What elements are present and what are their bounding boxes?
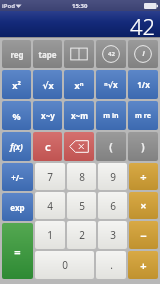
staticText: m re — [135, 111, 151, 121]
button[interactable]: ( — [96, 132, 126, 161]
staticText: 15:30 — [72, 2, 88, 10]
staticText: − — [140, 228, 147, 243]
button[interactable]: ÷ — [129, 163, 158, 190]
button[interactable]: √x — [33, 70, 62, 99]
staticText: +/− — [11, 172, 24, 183]
staticText: 1/x — [137, 79, 150, 90]
button[interactable]: Recall 42 — [96, 40, 126, 68]
staticText: √x — [42, 79, 54, 91]
staticText: × — [140, 198, 147, 213]
staticText: ⁿ√x — [104, 79, 118, 90]
staticText: % — [12, 110, 21, 122]
button[interactable]: tape — [33, 40, 62, 68]
button[interactable]: % — [2, 101, 31, 130]
button[interactable]: xⁿ — [64, 70, 94, 99]
button[interactable]: exp — [2, 193, 33, 221]
button[interactable]: Info — [128, 40, 158, 68]
button[interactable]: 5 — [67, 192, 96, 219]
button[interactable]: + — [128, 251, 158, 279]
staticText: ( — [109, 140, 113, 154]
staticText: ) — [141, 140, 145, 154]
staticText: 9 — [110, 170, 116, 184]
staticText: 42 — [130, 11, 156, 37]
staticText: . — [110, 258, 113, 272]
staticText: 1 — [47, 228, 53, 242]
button[interactable]: +/− — [2, 163, 33, 191]
staticText: m in — [103, 111, 119, 121]
button[interactable]: x² — [2, 70, 31, 99]
button[interactable]: Backspace — [64, 132, 94, 161]
staticText: 8 — [79, 170, 85, 184]
button[interactable]: 4 — [35, 192, 65, 219]
staticText: f(x) — [10, 141, 23, 152]
button[interactable]: m in — [96, 101, 126, 130]
button[interactable]: 2 — [67, 221, 96, 249]
button[interactable]: m re — [128, 101, 158, 130]
button[interactable]: . — [96, 251, 126, 279]
staticText: x~m — [71, 110, 88, 121]
button[interactable]: − — [129, 221, 158, 249]
button[interactable]: 1 — [35, 221, 65, 249]
staticText: 42 — [108, 50, 115, 58]
button[interactable]: = — [2, 223, 33, 279]
button[interactable]: 3 — [98, 221, 127, 249]
button[interactable]: f(x) — [2, 132, 31, 161]
button[interactable]: 8 — [67, 163, 96, 190]
staticText: reg — [10, 49, 24, 60]
button[interactable]: x~m — [64, 101, 94, 130]
button[interactable]: 1/x — [128, 70, 158, 99]
staticText: 0 — [62, 258, 68, 272]
staticText: i — [142, 49, 145, 59]
button[interactable]: × — [129, 192, 158, 219]
staticText: xⁿ — [74, 79, 84, 91]
button[interactable]: C — [33, 132, 62, 161]
staticText: x~y — [41, 110, 55, 121]
staticText: 5 — [79, 199, 85, 213]
button[interactable]: x~y — [33, 101, 62, 130]
staticText: tape — [38, 49, 57, 60]
staticText: ÷ — [140, 169, 147, 184]
button[interactable]: 6 — [98, 192, 127, 219]
staticText: C — [45, 141, 51, 153]
button[interactable]: ) — [128, 132, 158, 161]
staticText: x² — [12, 79, 21, 91]
staticText: 4 — [47, 199, 53, 213]
staticText: exp — [10, 202, 25, 213]
staticText: 2 — [79, 228, 85, 242]
staticText: 6 — [110, 199, 116, 213]
staticText: iPod — [2, 2, 16, 10]
button[interactable]: reg — [2, 40, 31, 68]
button[interactable]: 7 — [35, 163, 65, 190]
staticText: = — [14, 244, 21, 259]
staticText: 3 — [110, 228, 116, 242]
button[interactable]: 9 — [98, 163, 127, 190]
button[interactable]: Swap A and B — [64, 40, 94, 68]
button[interactable]: 0 — [35, 251, 94, 279]
button[interactable]: ⁿ√x — [96, 70, 126, 99]
staticText: 7 — [47, 170, 53, 184]
staticText: + — [140, 258, 147, 273]
